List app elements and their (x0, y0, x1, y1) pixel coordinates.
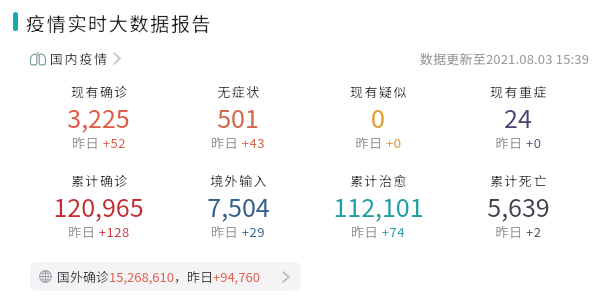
button[interactable]: 无症状 (168, 80, 308, 146)
staticText: 昨日 +128 (68, 222, 130, 241)
staticText: 昨日 +0 (355, 133, 402, 152)
button[interactable]: 现有重症 (448, 80, 588, 146)
staticText: 112,101 (333, 188, 424, 224)
staticText: 昨日 +43 (211, 133, 265, 152)
other: Domestic epidemic (30, 52, 46, 65)
staticText: 昨日 +0 (495, 133, 542, 152)
button[interactable]: Overseas cases (30, 262, 301, 291)
staticText: 数据更新至2021.08.03 15:39 (420, 49, 590, 68)
button[interactable]: Domestic epidemic (30, 49, 121, 68)
staticText: 24 (504, 99, 532, 135)
staticText: 0 (371, 99, 385, 135)
staticText: 昨日 +29 (211, 222, 265, 241)
button[interactable]: 累计死亡 (448, 169, 588, 235)
staticText: 现有疑似 (350, 82, 408, 101)
staticText: 昨日 +52 (72, 133, 126, 152)
staticText: 疫情实时大数据报告 (26, 9, 213, 37)
staticText: 国外确诊15,268,610，昨日+94,760 (57, 267, 260, 286)
staticText: 国内疫情 (50, 49, 109, 68)
staticText: 境外输入 (210, 171, 268, 190)
button[interactable]: 境外输入 (168, 169, 308, 235)
staticText: 501 (217, 99, 259, 135)
button[interactable]: 现有确诊 (29, 80, 168, 146)
staticText: 现有确诊 (71, 82, 129, 101)
staticText: 现有重症 (490, 82, 548, 101)
staticText: 昨日 +74 (351, 222, 405, 241)
staticText: 累计确诊 (71, 171, 129, 190)
staticText: 5,639 (487, 188, 550, 224)
staticText: 无症状 (217, 82, 261, 101)
other: Overseas cases (39, 270, 52, 283)
staticText: 7,504 (207, 188, 270, 224)
staticText: 昨日 +2 (495, 222, 542, 241)
button[interactable]: 累计确诊 (29, 169, 168, 235)
staticText: 3,225 (67, 99, 130, 135)
staticText: 累计治愈 (350, 171, 408, 190)
staticText: 累计死亡 (490, 171, 548, 190)
staticText: 120,965 (53, 188, 144, 224)
button[interactable]: 现有疑似 (308, 80, 448, 146)
button[interactable]: 累计治愈 (308, 169, 448, 235)
